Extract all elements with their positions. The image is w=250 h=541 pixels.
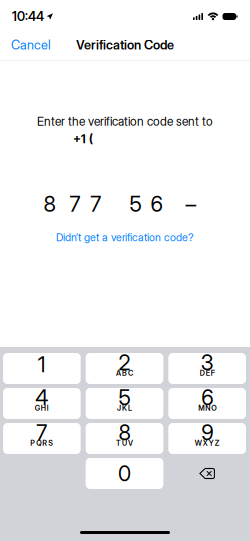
button[interactable]: 1 [3,353,81,384]
staticText: 6 [201,385,213,410]
staticText: M N O [198,404,216,412]
staticText: 3 [201,350,214,375]
staticText: Enter the verification code sent to [37,114,213,128]
staticText: 4 [35,385,48,410]
staticText: Didn’t get a verification code? [56,231,194,244]
staticText: 7 [69,191,80,217]
staticText: D E F [200,369,215,377]
staticText: G H I [35,404,49,412]
button[interactable]: 4 [3,388,81,419]
staticText: Verification Code [76,37,174,53]
staticText: 8 [43,191,55,217]
staticText: Cancel [11,37,51,53]
staticText: +1 ( [73,131,93,146]
staticText: 7 [90,191,101,217]
staticText: 1 [38,352,46,377]
staticText: 7 [36,420,47,445]
staticText: J K L [117,404,132,412]
staticText: 5 [129,191,141,217]
button[interactable]: 6 [168,388,246,419]
button[interactable]: 9 [168,423,246,454]
staticText: 9 [201,420,213,445]
staticText: 5 [118,385,130,410]
button[interactable]: 5 [86,388,163,419]
button[interactable]: 7 [3,423,81,454]
staticText: A B C [116,369,133,377]
button[interactable]: Cancel [0,29,61,60]
staticText: 10:44 [12,9,44,24]
staticText: 0 [118,461,131,486]
staticText: – [185,191,196,217]
button[interactable]: 0 [86,458,163,489]
staticText: W X Y Z [195,439,220,447]
button[interactable]: 8 [86,423,163,454]
button[interactable]: Delete [168,458,246,489]
staticText: 6 [150,191,162,217]
button[interactable]: 2 [86,353,163,384]
staticText: 2 [118,350,130,375]
staticText: 8 [118,420,130,445]
staticText: T U V [116,439,133,447]
button[interactable]: Didn’t get a verification code? [52,227,198,248]
button[interactable]: 3 [168,353,246,384]
staticText: P Q R S [30,439,53,447]
